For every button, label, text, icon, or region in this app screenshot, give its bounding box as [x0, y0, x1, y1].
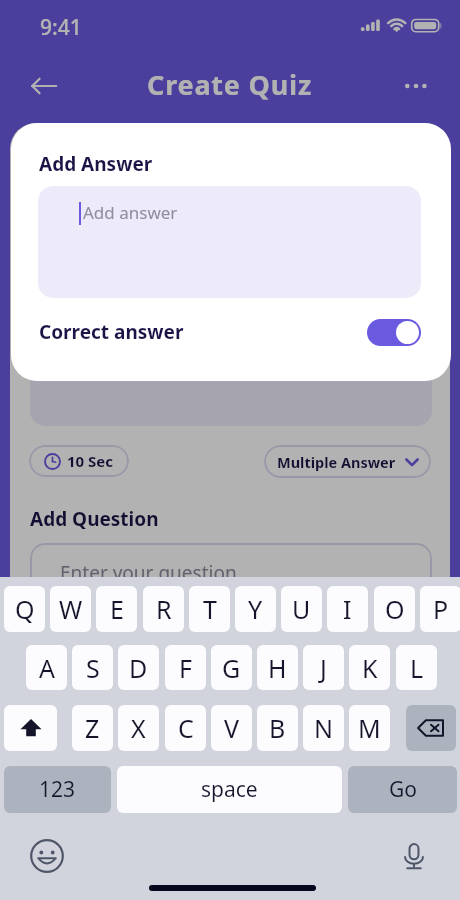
staticText: Add Question	[30, 506, 159, 532]
button[interactable]: G	[211, 645, 252, 690]
button[interactable]: Emoji	[30, 839, 64, 873]
button[interactable]: N	[303, 705, 344, 751]
button[interactable]: F	[165, 645, 206, 690]
staticText: D	[129, 651, 148, 685]
button[interactable]: U	[281, 586, 322, 632]
staticText: Correct answer	[39, 319, 184, 345]
button[interactable]: Shift	[4, 705, 57, 751]
staticText: P	[433, 592, 449, 626]
button[interactable]: I	[327, 586, 368, 632]
staticText: E	[110, 592, 124, 626]
staticText: Enter your question	[60, 560, 237, 577]
staticText: 9:41	[40, 13, 82, 42]
button[interactable]: R	[143, 586, 184, 632]
staticText: B	[269, 711, 286, 745]
staticText: H	[268, 651, 287, 685]
staticText: U	[292, 592, 311, 626]
staticText: W	[59, 592, 83, 626]
button[interactable]: Z	[72, 705, 113, 751]
button[interactable]: 123	[4, 766, 111, 813]
button[interactable]: L	[396, 645, 437, 690]
button[interactable]: A	[26, 645, 67, 690]
staticText: Multiple Answer	[277, 452, 396, 472]
staticText: Add Answer	[39, 151, 153, 177]
staticText: J	[320, 651, 327, 685]
staticText: Add answer	[83, 201, 178, 224]
button[interactable]: W	[50, 586, 91, 632]
staticText: 10 Sec	[67, 451, 114, 471]
button[interactable]: O	[374, 586, 415, 632]
staticText: V	[224, 711, 240, 745]
staticText: C	[178, 711, 194, 745]
button[interactable]: E	[96, 586, 137, 632]
staticText: 123	[39, 775, 76, 804]
button[interactable]: Add answer	[38, 186, 421, 298]
staticText: space	[201, 775, 258, 804]
staticText: F	[179, 651, 192, 685]
staticText: Z	[85, 711, 100, 745]
staticText: M	[358, 711, 381, 745]
staticText: S	[86, 651, 100, 685]
button[interactable]: Go	[348, 766, 457, 813]
staticText: A	[39, 651, 55, 685]
button[interactable]: D	[118, 645, 159, 690]
staticText: X	[131, 711, 146, 745]
button[interactable]: J	[303, 645, 344, 690]
staticText: K	[362, 651, 378, 685]
button[interactable]: Enter your question	[30, 543, 432, 577]
button[interactable]: C	[165, 705, 206, 751]
button[interactable]: H	[257, 645, 298, 690]
button[interactable]: Dictation	[400, 843, 428, 871]
button[interactable]: More options	[393, 63, 439, 109]
button[interactable]: B	[257, 705, 298, 751]
button[interactable]: Correct answer toggle	[367, 319, 421, 346]
staticText: O	[385, 592, 405, 626]
staticText: R	[156, 592, 172, 626]
button[interactable]: X	[118, 705, 159, 751]
button[interactable]: S	[72, 645, 113, 690]
staticText: Create Quiz	[147, 66, 313, 103]
button[interactable]: space	[117, 766, 342, 813]
staticText: Go	[389, 775, 417, 804]
staticText: Q	[15, 592, 35, 626]
staticText: G	[222, 651, 241, 685]
staticText: I	[343, 592, 352, 626]
button[interactable]: V	[211, 705, 252, 751]
button[interactable]: Multiple Answer	[264, 445, 431, 478]
button[interactable]: M	[349, 705, 390, 751]
button[interactable]: Backspace	[406, 705, 456, 751]
button[interactable]: T	[189, 586, 230, 632]
button[interactable]: Y	[235, 586, 276, 632]
staticText: Y	[248, 592, 263, 626]
staticText: T	[203, 592, 217, 626]
staticText: L	[410, 651, 424, 685]
button[interactable]: 10 Sec	[29, 445, 129, 477]
staticText: N	[314, 711, 334, 745]
button[interactable]: Back	[21, 63, 67, 109]
button[interactable]: P	[420, 586, 460, 632]
button[interactable]: Q	[4, 586, 45, 632]
button[interactable]: K	[349, 645, 390, 690]
